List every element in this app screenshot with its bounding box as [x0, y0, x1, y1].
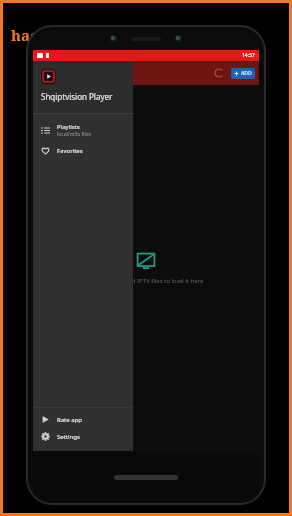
staticText: hack-cheat.org: [11, 25, 124, 45]
button[interactable]: Settings: [33, 428, 133, 445]
button[interactable]: Playlists: [33, 119, 133, 142]
staticText: 14:37: [242, 52, 255, 59]
button[interactable]: Rate app: [33, 411, 133, 428]
staticText: Favorites: [57, 147, 83, 155]
staticText: Playlists: [57, 123, 80, 131]
staticText: ADD: [241, 70, 252, 77]
button[interactable]: Favorites: [33, 142, 133, 159]
staticText: local/m3u files: [57, 131, 92, 138]
button[interactable]: Refresh: [212, 66, 226, 80]
button[interactable]: ADD: [231, 68, 255, 79]
staticText: Settings: [57, 433, 80, 441]
staticText: No playlists. Add IPTV files to load it …: [81, 277, 211, 285]
staticText: Shqiptvision Player: [41, 91, 113, 102]
staticText: Rate app: [57, 416, 82, 424]
